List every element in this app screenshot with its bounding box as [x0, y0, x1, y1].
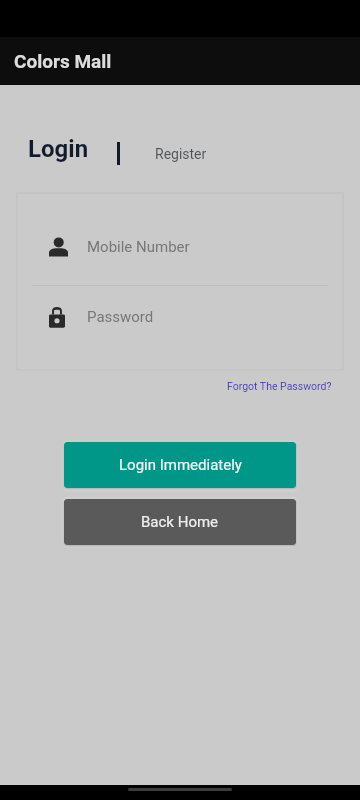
staticText: Colors Mall	[14, 50, 112, 72]
staticText: Login	[28, 135, 89, 163]
button[interactable]: Register	[140, 136, 221, 171]
staticText: Password	[87, 308, 154, 326]
button[interactable]: Back Home	[64, 499, 296, 545]
staticText: Back Home	[141, 513, 219, 531]
other: Mobile Number	[49, 238, 68, 257]
button[interactable]: Mobile Number	[17, 193, 343, 285]
button[interactable]: Login	[16, 129, 100, 171]
button[interactable]: Password	[17, 285, 343, 370]
other: Password	[49, 307, 65, 327]
staticText: Mobile Number	[87, 238, 190, 256]
button[interactable]: Forgot The Password?	[227, 380, 332, 392]
staticText: Register	[155, 146, 207, 162]
staticText: Forgot The Password?	[227, 380, 332, 392]
button[interactable]: Login Immediately	[64, 442, 296, 488]
staticText: Login Immediately	[119, 456, 242, 474]
